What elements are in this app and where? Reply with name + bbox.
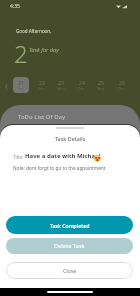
staticText: 25 xyxy=(98,79,104,86)
button[interactable]: 22 xyxy=(33,77,49,93)
staticText: Have a date with Michael xyxy=(25,152,101,160)
button[interactable]: Delete Task xyxy=(6,238,133,254)
staticText: Task Completed xyxy=(50,222,90,229)
staticText: 2 xyxy=(14,37,28,70)
staticText: Sun xyxy=(38,86,45,91)
button[interactable]: 21 xyxy=(13,77,29,93)
staticText: 21 xyxy=(18,79,24,86)
button[interactable]: 25 xyxy=(93,77,109,93)
staticText: Task for day xyxy=(29,46,59,54)
staticText: 4:35 xyxy=(10,3,20,10)
button[interactable]: 24 xyxy=(73,77,89,93)
button[interactable]: Close xyxy=(6,262,133,279)
button[interactable]: Previous week xyxy=(4,84,9,89)
staticText: Title: xyxy=(13,154,25,160)
staticText: 23 xyxy=(58,79,64,86)
staticText: 22 xyxy=(39,79,45,86)
staticText: ToDo List Of Day xyxy=(18,113,66,121)
button[interactable]: 26 xyxy=(113,77,129,93)
staticText: Delete Task xyxy=(54,242,85,250)
staticText: Good Afternoon, xyxy=(16,28,52,34)
staticText: Note: dont forgt to go to the appointmen… xyxy=(13,165,106,171)
staticText: 24 xyxy=(79,79,85,86)
staticText: 26 xyxy=(119,79,125,86)
other: Wifi xyxy=(116,4,121,9)
staticText: Sat xyxy=(18,86,24,91)
staticText: Wed xyxy=(97,86,105,91)
staticText: Close xyxy=(63,267,77,274)
staticText: Tue xyxy=(78,86,85,91)
other: Signal xyxy=(122,4,127,9)
staticText: Mon xyxy=(57,86,65,91)
button[interactable]: 23 xyxy=(53,77,69,93)
button[interactable]: Task Completed xyxy=(6,216,133,234)
staticText: Thu xyxy=(118,86,125,91)
staticText: Task Details xyxy=(55,135,86,142)
